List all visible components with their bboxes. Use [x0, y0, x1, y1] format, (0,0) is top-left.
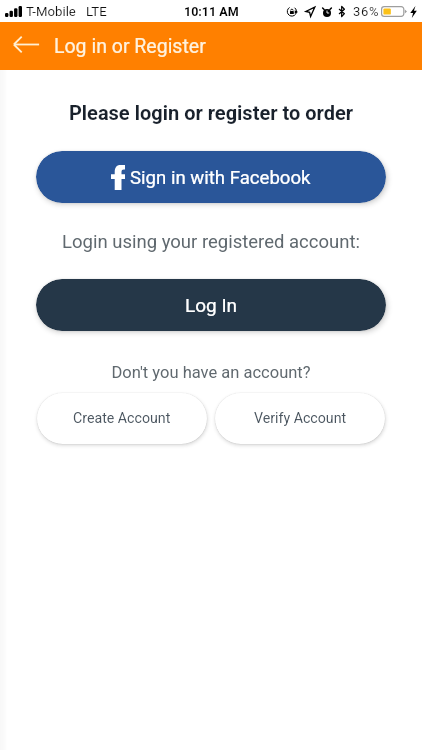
staticText: Log In: [185, 294, 238, 316]
staticText: Verify Account: [254, 410, 347, 427]
staticText: Create Account: [73, 410, 171, 427]
button[interactable]: Back: [0, 22, 52, 70]
button[interactable]: Create Account: [37, 393, 207, 444]
button[interactable]: Log In: [36, 279, 386, 331]
staticText: Don't you have an account?: [0, 363, 422, 382]
staticText: LTE: [86, 4, 107, 19]
staticText: Login using your registered account:: [0, 231, 422, 253]
staticText: Log in or Register: [54, 35, 206, 58]
staticText: 10:11 AM: [184, 4, 239, 19]
button[interactable]: Verify Account: [215, 393, 385, 444]
staticText: 36%: [353, 4, 380, 19]
staticText: Sign in with Facebook: [130, 167, 311, 189]
button[interactable]: Sign in with Facebook: [36, 151, 386, 203]
staticText: T-Mobile: [26, 4, 76, 19]
staticText: Please login or register to order: [0, 101, 422, 124]
